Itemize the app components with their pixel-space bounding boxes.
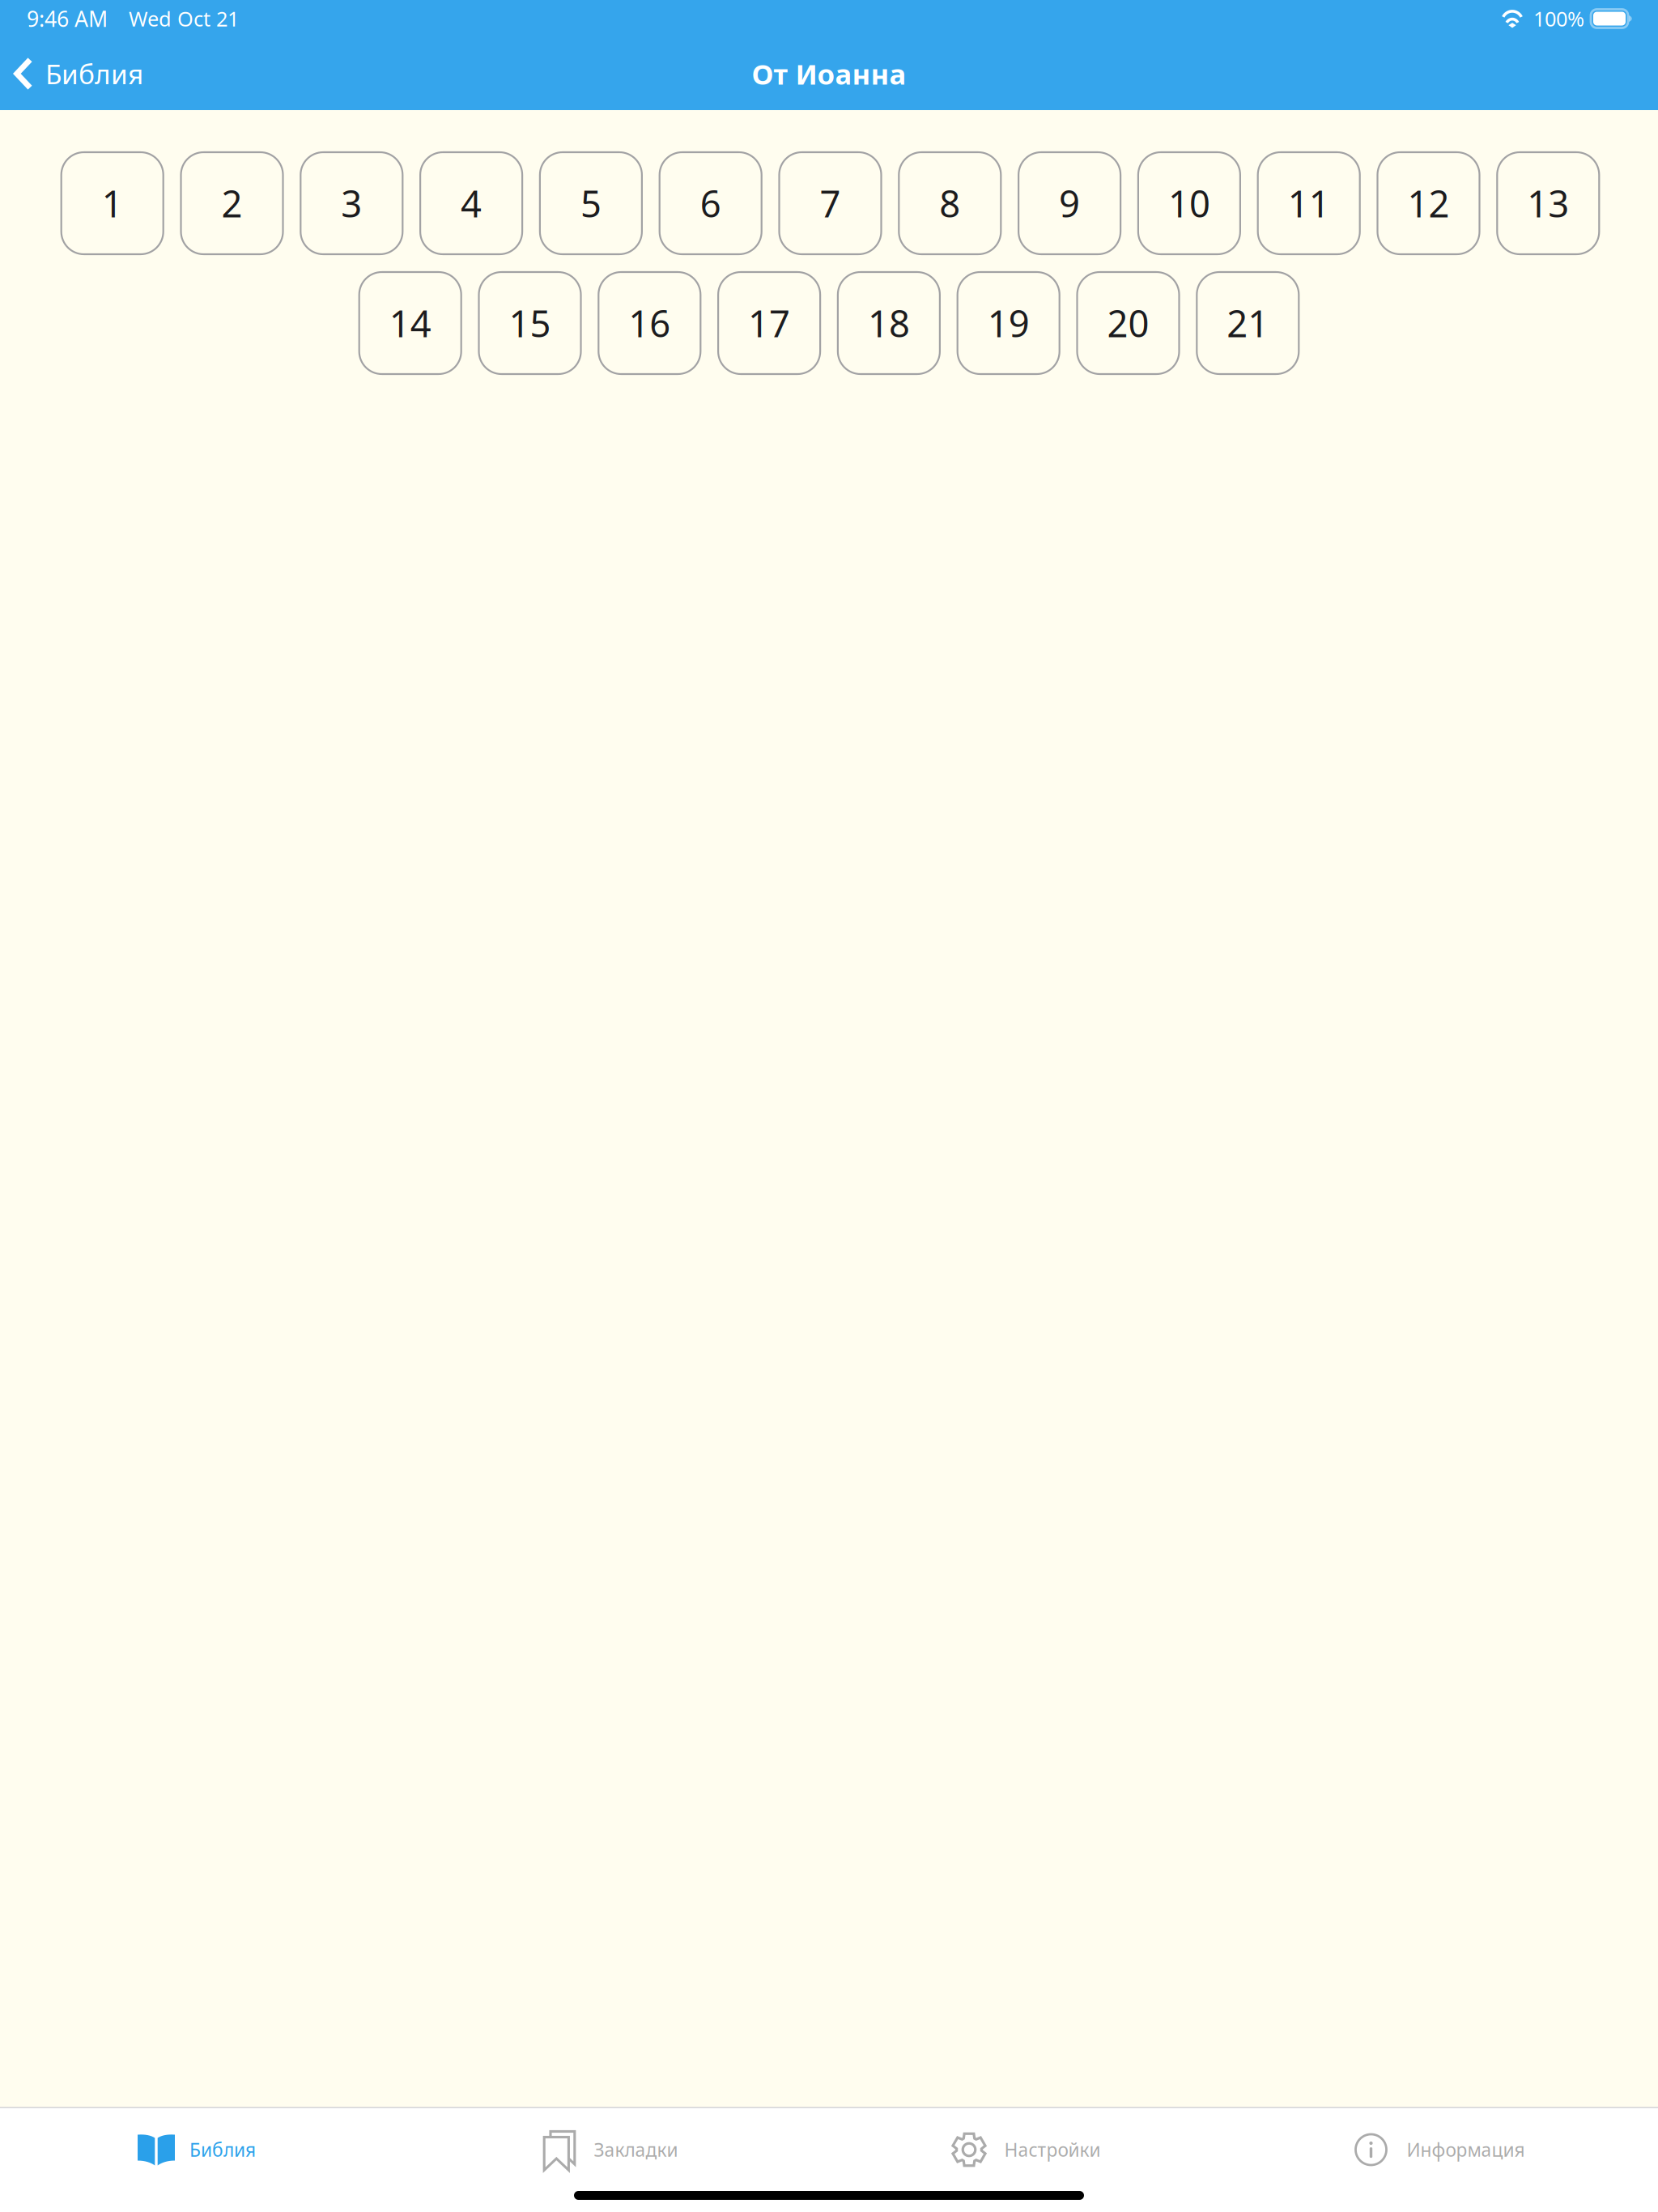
button[interactable]: 20 [1077,272,1179,374]
button[interactable]: Библия [0,2108,414,2191]
staticText: 15 [509,299,551,347]
staticText: 7 [820,179,841,228]
staticText: 18 [868,299,910,347]
staticText: Закладки [594,2137,678,2162]
staticText: Настройки [1004,2137,1101,2162]
staticText: 5 [580,179,601,228]
button[interactable]: 19 [957,272,1059,374]
staticText: 8 [939,179,960,228]
staticText: 10 [1168,179,1210,228]
staticText: 21 [1227,299,1269,347]
staticText: 4 [461,179,482,228]
staticText: 12 [1407,179,1450,228]
button[interactable]: Закладки [414,2108,829,2191]
staticText: 9:46 AM [27,4,108,33]
button[interactable]: 16 [599,272,701,374]
button[interactable]: 3 [301,152,403,254]
button[interactable]: 14 [359,272,461,374]
staticText: 20 [1107,299,1149,347]
button[interactable]: 7 [779,152,881,254]
button[interactable]: 21 [1197,272,1299,374]
staticText: Wed Oct 21 [129,5,239,32]
button[interactable]: 17 [718,272,820,374]
staticText: 17 [748,299,790,347]
staticText: 19 [987,299,1030,347]
staticText: 3 [341,179,362,228]
button[interactable]: 18 [838,272,940,374]
staticText: 6 [700,179,721,228]
button[interactable]: 9 [1019,152,1121,254]
staticText: 100% [1533,5,1584,32]
button[interactable]: 1 [61,152,163,254]
staticText: Информация [1407,2137,1525,2162]
staticText: Библия [189,2137,256,2162]
button[interactable]: Настройки [829,2108,1243,2191]
staticText: Библия [45,56,143,92]
button[interactable]: 12 [1377,152,1479,254]
button[interactable]: 13 [1497,152,1599,254]
button[interactable]: 11 [1258,152,1360,254]
staticText: 9 [1059,179,1080,228]
staticText: 14 [389,299,431,347]
staticText: 13 [1527,179,1569,228]
staticText: 2 [221,179,242,228]
button[interactable]: 8 [899,152,1001,254]
button[interactable]: Информация [1243,2108,1658,2191]
button[interactable]: 6 [660,152,762,254]
staticText: От Иоанна [752,55,906,92]
button[interactable]: 2 [181,152,283,254]
button[interactable]: 4 [420,152,522,254]
staticText: 1 [102,179,123,228]
button[interactable]: 5 [540,152,642,254]
staticText: 11 [1288,179,1330,228]
button[interactable]: 15 [479,272,581,374]
staticText: 16 [628,299,671,347]
button[interactable]: 10 [1138,152,1240,254]
button[interactable]: Back to Библия [0,37,161,110]
